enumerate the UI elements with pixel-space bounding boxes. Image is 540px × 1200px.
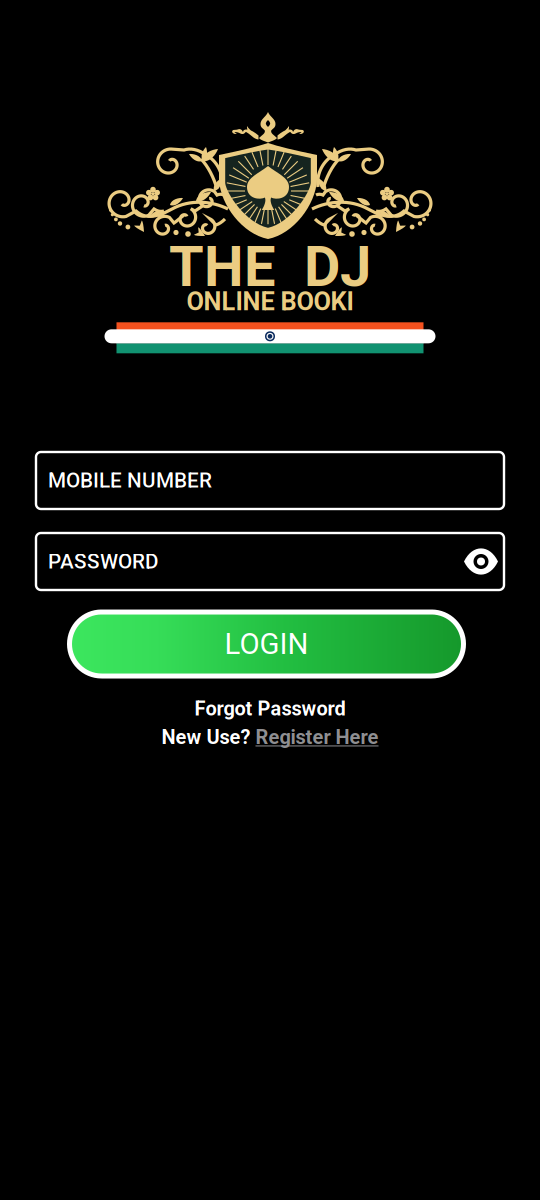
staticText: New Use?	[161, 725, 250, 749]
button[interactable]: Register Here	[255, 725, 378, 749]
staticText: Forgot Password	[194, 697, 345, 720]
button[interactable]: Show password	[461, 544, 501, 578]
button[interactable]: Forgot Password	[194, 697, 345, 720]
button[interactable]: LOGIN	[70, 609, 470, 679]
staticText: PASSWORD	[48, 549, 158, 574]
staticText: THE DJ	[169, 234, 371, 300]
staticText: MOBILE NUMBER	[48, 468, 212, 493]
staticText: LOGIN	[224, 627, 308, 661]
staticText: Register Here	[255, 725, 378, 749]
staticText: ONLINE BOOKI	[186, 287, 353, 316]
